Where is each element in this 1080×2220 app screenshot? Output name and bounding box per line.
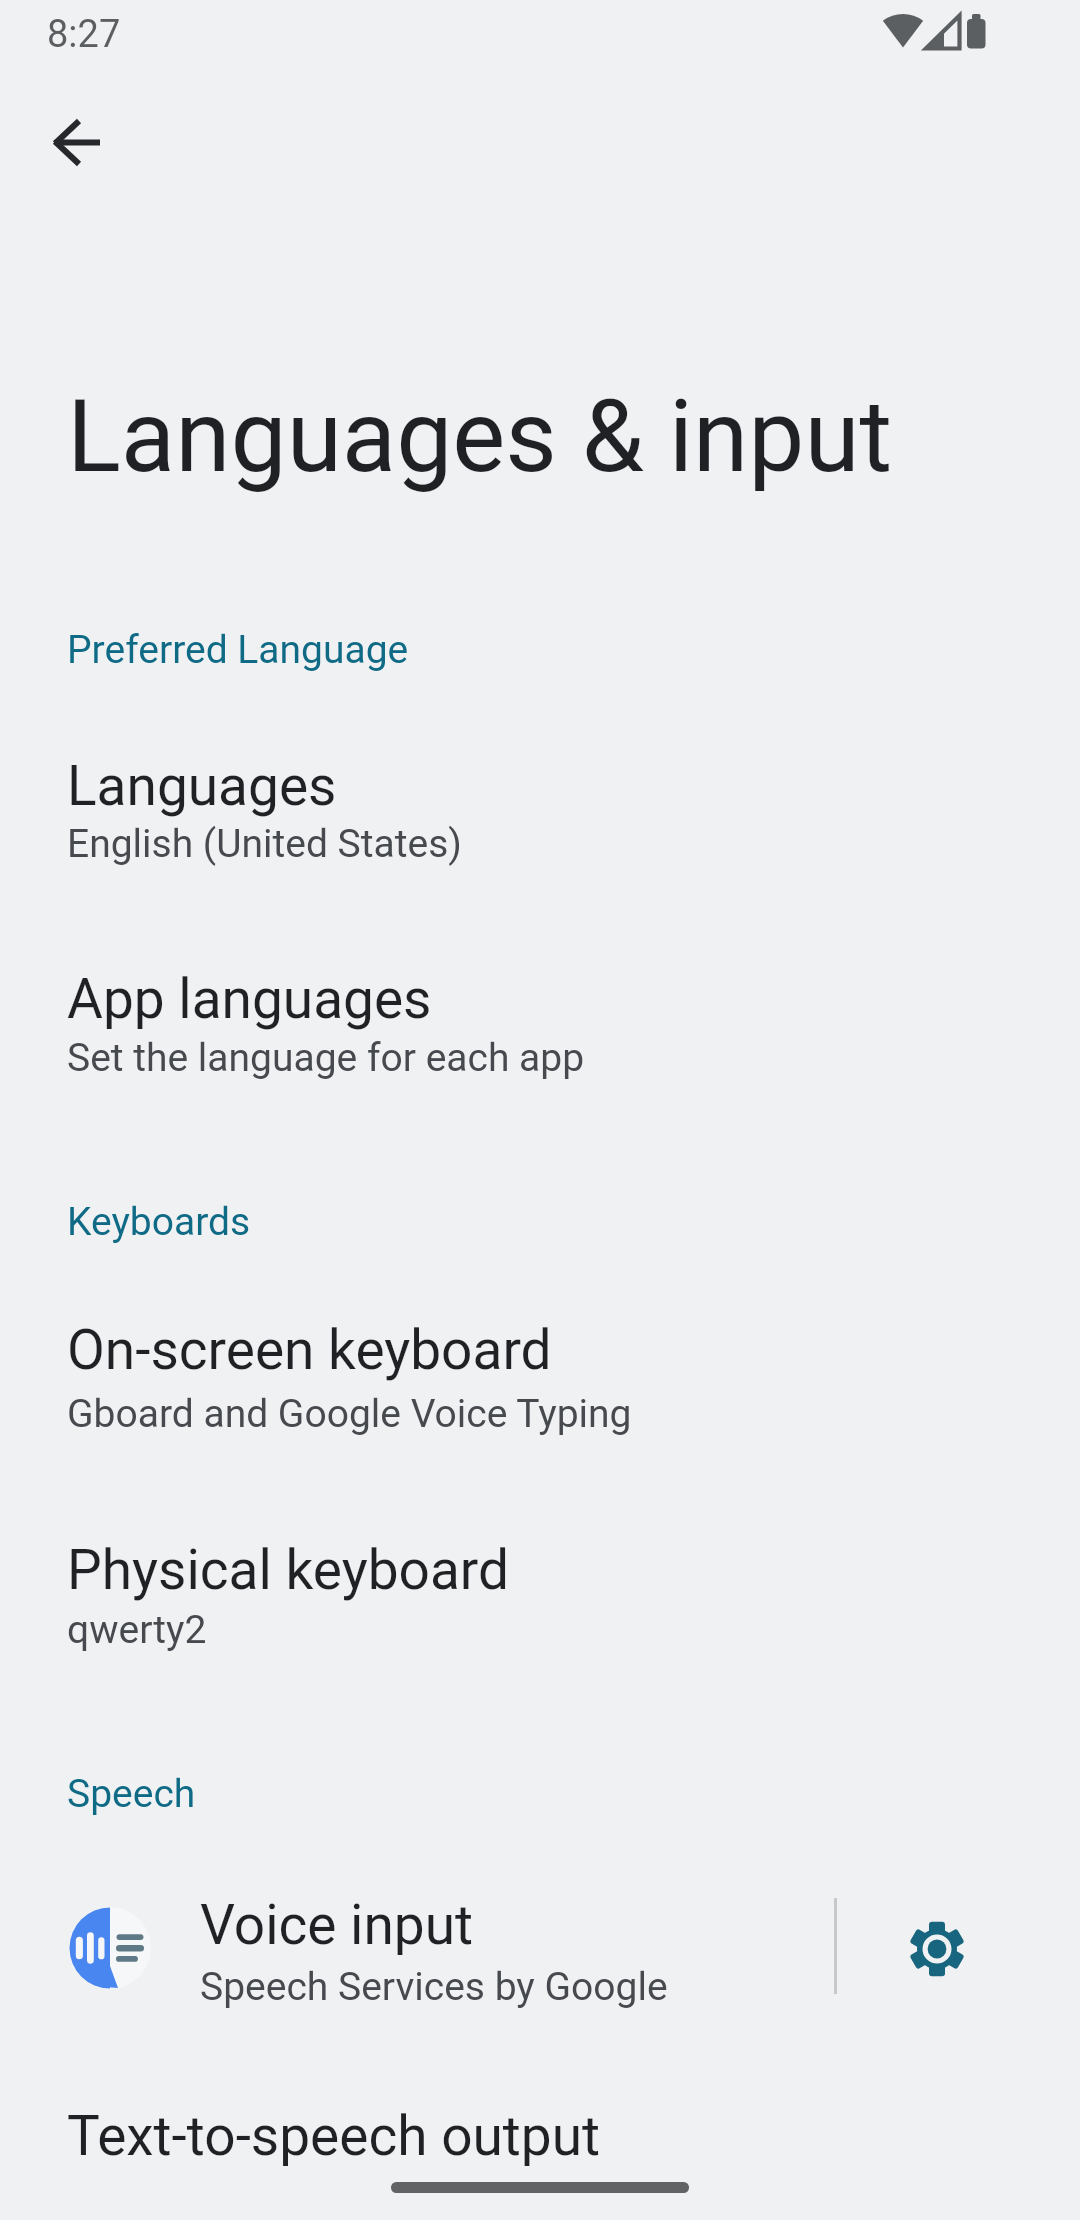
button[interactable] bbox=[0, 730, 1080, 890]
staticText: Keyboards bbox=[67, 1199, 251, 1245]
staticText: 8:27 bbox=[47, 12, 121, 57]
staticText: Speech Services by Google bbox=[200, 1964, 668, 2010]
staticText: Languages bbox=[67, 754, 337, 818]
staticText: Text-to-speech output bbox=[67, 2104, 601, 2168]
button[interactable] bbox=[0, 2090, 1080, 2220]
staticText: Preferred Language bbox=[67, 627, 409, 673]
staticText: Gboard and Google Voice Typing bbox=[67, 1391, 632, 1437]
button[interactable] bbox=[0, 1518, 1080, 1678]
staticText: Languages & input bbox=[67, 378, 893, 495]
button[interactable] bbox=[0, 946, 1080, 1106]
staticText: English (United States) bbox=[67, 821, 462, 867]
button[interactable] bbox=[0, 1873, 832, 2023]
staticText: Speech bbox=[67, 1771, 196, 1817]
staticText: qwerty2 bbox=[67, 1607, 207, 1653]
staticText: On-screen keyboard bbox=[67, 1318, 552, 1382]
button[interactable] bbox=[0, 1303, 1080, 1463]
staticText: Voice input bbox=[200, 1893, 474, 1957]
staticText: Set the language for each app bbox=[67, 1035, 585, 1081]
button[interactable] bbox=[889, 1901, 985, 1997]
button[interactable] bbox=[30, 95, 126, 191]
staticText: Physical keyboard bbox=[67, 1538, 509, 1602]
staticText: App languages bbox=[67, 967, 432, 1031]
